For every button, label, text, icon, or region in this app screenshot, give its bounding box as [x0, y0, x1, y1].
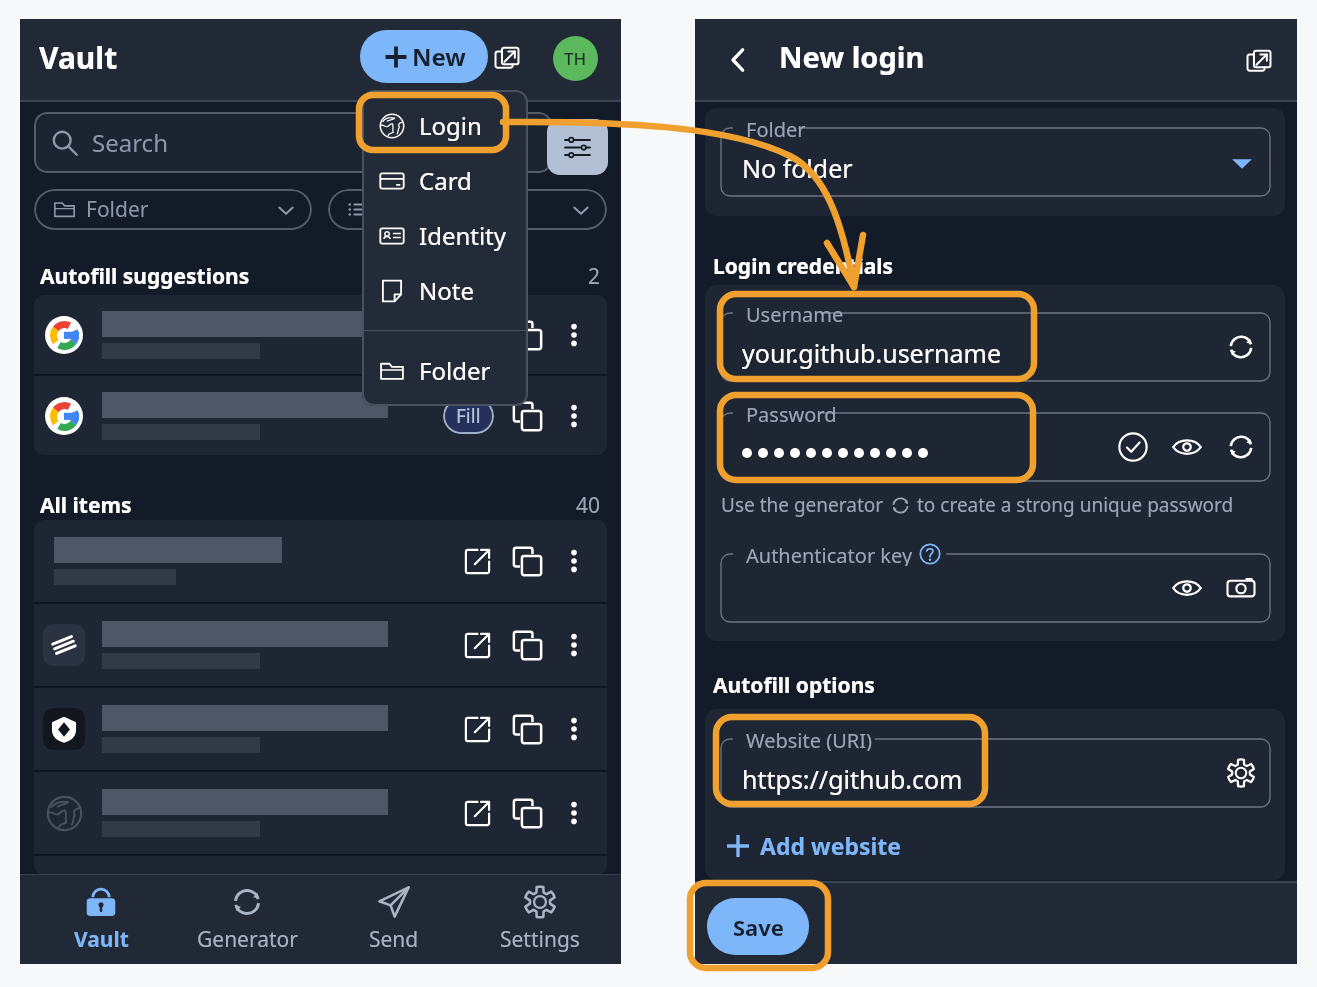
button[interactable]: Launch [34, 520, 607, 602]
staticText: New login [779, 37, 925, 76]
button[interactable]: Launch [453, 621, 501, 669]
button[interactable]: More options [551, 790, 597, 836]
button[interactable]: Launch [453, 705, 501, 753]
button[interactable]: Show password [1166, 426, 1208, 468]
staticText: Folder [86, 195, 274, 224]
staticText: All items [40, 491, 132, 520]
button[interactable]: Check password for breaches [1112, 426, 1154, 468]
button[interactable]: TH [553, 36, 598, 81]
staticText: Vault [39, 37, 118, 78]
button[interactable]: Launch [34, 772, 607, 854]
staticText: Use the generator [721, 492, 884, 518]
button[interactable]: Login [362, 98, 528, 153]
staticText: Search [92, 126, 168, 159]
button[interactable]: Send [329, 874, 459, 964]
button[interactable]: Note [362, 263, 528, 318]
button[interactable]: Fill [443, 398, 494, 434]
button[interactable]: Filter [547, 119, 608, 175]
staticText: Card [419, 164, 472, 197]
button[interactable]: Open in new window [1237, 38, 1281, 82]
staticText: TH [564, 47, 587, 70]
button[interactable]: Save [707, 898, 809, 955]
staticText: No folder [742, 151, 853, 185]
button[interactable]: Launch [34, 688, 607, 770]
staticText: Fill [456, 403, 481, 429]
button[interactable]: Folder [362, 343, 528, 398]
button[interactable]: More options [551, 393, 597, 439]
button[interactable]: Copy [503, 311, 551, 359]
button[interactable]: More options [551, 538, 597, 584]
button[interactable]: Identity [362, 208, 528, 263]
button[interactable]: Launch [453, 311, 501, 359]
button[interactable]: Show authenticator key [1166, 567, 1208, 609]
button[interactable]: More options [551, 312, 597, 358]
button[interactable]: Choose folder [1222, 143, 1262, 183]
button[interactable]: Copy [503, 537, 551, 585]
button[interactable]: Back [719, 40, 759, 80]
staticText: Folder [419, 354, 491, 387]
button[interactable]: More options [551, 706, 597, 752]
button[interactable]: URI match detection settings [1220, 752, 1262, 794]
button[interactable]: Copy [503, 392, 551, 440]
button[interactable]: Add website [719, 824, 908, 867]
staticText: 40 [576, 491, 601, 520]
staticText: Folder [746, 116, 806, 140]
staticText: https://github.com [742, 762, 963, 796]
staticText: 2 [588, 262, 601, 291]
button[interactable]: Scan QR code [1220, 567, 1262, 609]
staticText: New [412, 40, 466, 73]
staticText: Type [380, 195, 569, 224]
button[interactable]: Open in new window [486, 36, 528, 78]
staticText: Login credentials [713, 252, 894, 281]
button[interactable]: Type [328, 189, 607, 230]
button[interactable]: Launch [34, 295, 607, 374]
staticText: Send [369, 925, 419, 954]
staticText: your.github.username [742, 336, 1001, 370]
staticText: Authenticator key [746, 542, 913, 566]
staticText: Identity [419, 219, 507, 252]
staticText: Password [746, 401, 837, 425]
staticText: Autofill suggestions [40, 262, 250, 291]
button[interactable]: Copy [503, 705, 551, 753]
button[interactable]: More options [551, 622, 597, 668]
button[interactable]: Copy [503, 789, 551, 837]
staticText: Website (URI) [746, 727, 873, 751]
button[interactable]: Generate username [1220, 326, 1262, 368]
staticText: Generator [197, 925, 298, 954]
staticText: Note [419, 274, 474, 307]
staticText: Settings [500, 925, 580, 954]
button[interactable]: Settings [475, 874, 605, 964]
button[interactable]: New [360, 30, 488, 83]
button[interactable]: Search [34, 112, 552, 173]
staticText: Add website [760, 830, 902, 861]
button[interactable]: Folder [34, 189, 312, 230]
button[interactable]: Launch [453, 537, 501, 585]
button[interactable]: Vault [36, 874, 166, 964]
button[interactable]: Launch [453, 789, 501, 837]
staticText: Login [419, 109, 482, 142]
staticText: Vault [74, 925, 129, 954]
button[interactable]: Card [362, 153, 528, 208]
staticText: Username [746, 301, 844, 325]
button[interactable]: Fill [34, 376, 607, 455]
staticText: Autofill options [713, 671, 875, 700]
button[interactable]: Launch [34, 604, 607, 686]
staticText: Save [733, 912, 784, 942]
button[interactable]: Generate password [1220, 426, 1262, 468]
button[interactable]: Copy [503, 621, 551, 669]
button[interactable]: Generator [182, 874, 312, 964]
staticText: to create a strong unique password [917, 492, 1234, 518]
